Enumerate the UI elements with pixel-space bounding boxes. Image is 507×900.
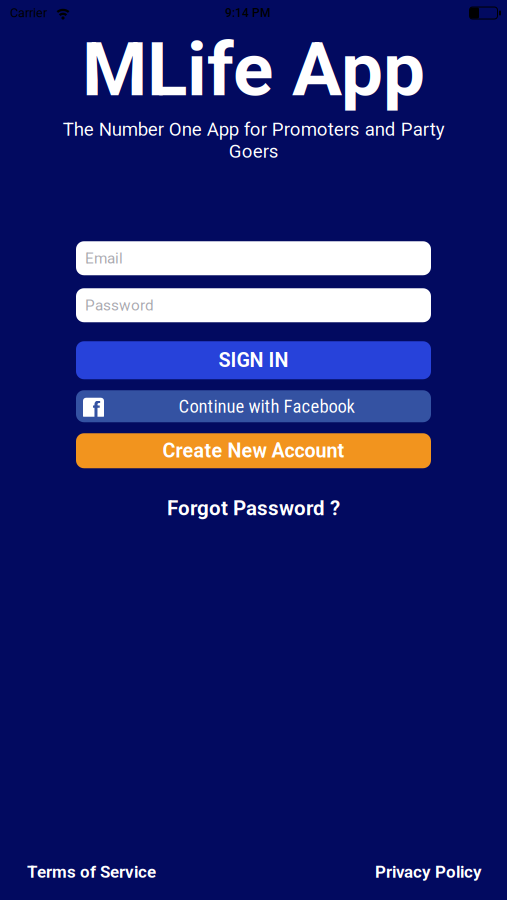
button[interactable]: Terms of Service xyxy=(27,862,156,882)
staticText: The Number One App for Promoters and Par… xyxy=(62,118,444,162)
button[interactable]: Email xyxy=(76,241,431,275)
staticText: Terms of Service xyxy=(27,862,156,882)
staticText: MLife App xyxy=(82,26,425,113)
staticText: Carrier xyxy=(10,6,47,20)
staticText: SIGN IN xyxy=(218,349,288,372)
staticText: f xyxy=(92,398,100,423)
button[interactable]: Password xyxy=(76,288,431,322)
button[interactable]: Create New Account xyxy=(76,433,431,468)
staticText: Password xyxy=(85,296,154,314)
button[interactable]: Forgot Password ? xyxy=(167,496,340,520)
button[interactable]: Privacy Policy xyxy=(375,862,482,882)
staticText: Forgot Password ? xyxy=(167,496,340,520)
button[interactable]: SIGN IN xyxy=(76,341,431,379)
staticText: Continue with Facebook xyxy=(178,395,354,417)
staticText: Privacy Policy xyxy=(375,862,482,882)
staticText: Create New Account xyxy=(162,439,344,462)
button[interactable]: f xyxy=(76,390,431,422)
staticText: Email xyxy=(85,249,123,267)
staticText: 9:14 PM xyxy=(225,6,270,20)
